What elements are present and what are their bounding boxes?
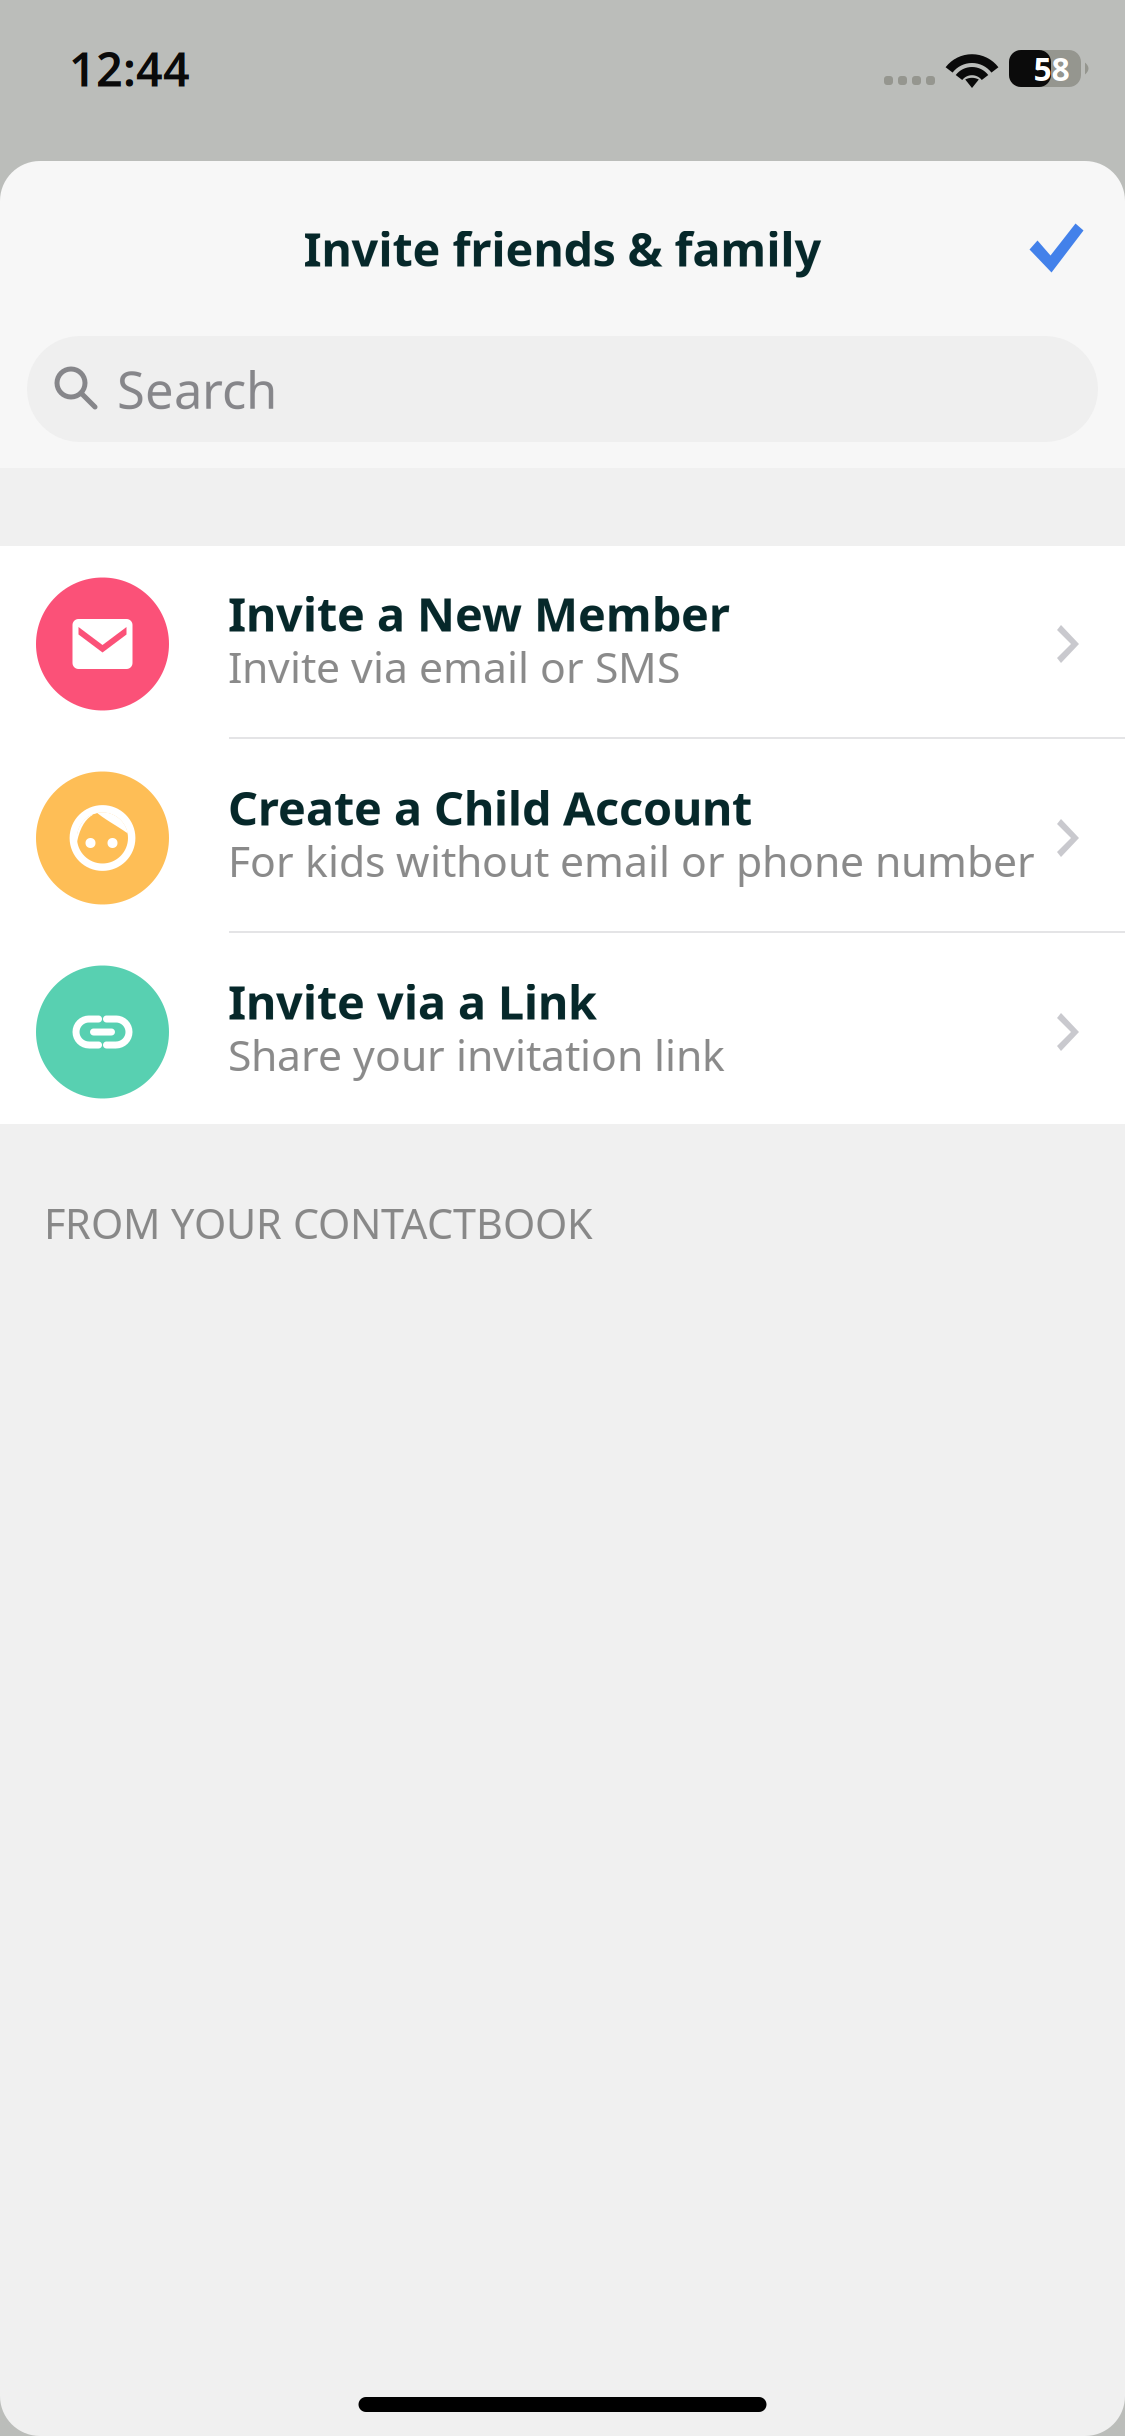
staticText: Invite friends & family [303, 217, 821, 279]
staticText: 58 [1033, 47, 1069, 90]
button[interactable]: Invite via a Link [0, 933, 1125, 1125]
staticText: Search [117, 355, 277, 423]
staticText: Create a Child Account [228, 776, 752, 838]
staticText: FROM YOUR CONTACTBOOK [44, 1196, 593, 1250]
staticText: Invite via a Link [228, 970, 597, 1032]
button[interactable]: Search [27, 336, 1098, 442]
staticText: Invite a New Member [228, 582, 730, 644]
staticText: For kids without email or phone number [228, 832, 1035, 889]
staticText: Share your invitation link [228, 1026, 725, 1083]
button[interactable]: Invite a New Member [0, 545, 1125, 737]
button[interactable]: Done [1001, 192, 1113, 304]
staticText: 12:44 [69, 37, 190, 99]
button[interactable]: Create a Child Account [0, 739, 1125, 931]
staticText: Invite via email or SMS [228, 638, 680, 695]
